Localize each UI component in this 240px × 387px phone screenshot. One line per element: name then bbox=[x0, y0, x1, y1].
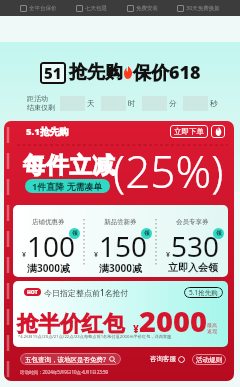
staticText: 满3000减 bbox=[99, 261, 142, 273]
staticText: 今日指定整点前1名抢付 bbox=[44, 287, 129, 298]
staticText: 最高 bbox=[207, 322, 217, 328]
staticText: 5.1抢先购 bbox=[26, 125, 69, 138]
staticText: 1件直降 无需凑单 bbox=[32, 180, 103, 192]
staticText: 领 bbox=[72, 230, 78, 237]
button[interactable]: 30天免费换新 bbox=[177, 4, 220, 12]
staticText: 领 bbox=[216, 230, 222, 237]
staticText: 立即下单 bbox=[174, 127, 204, 136]
staticText: 七天包退 bbox=[85, 5, 107, 12]
staticText: 全平台保价 bbox=[29, 5, 57, 12]
staticText: 30天免费换新 bbox=[186, 4, 220, 12]
staticText: 100 bbox=[27, 227, 76, 265]
staticText: 五包查询，该地区是否免费? bbox=[25, 355, 106, 364]
staticText: *4.26日15点/20点/21点/22点/23点每整点前1名抢付返2000元半… bbox=[18, 334, 172, 340]
staticText: 咨询客服 bbox=[150, 355, 176, 363]
staticText: 2000 bbox=[139, 301, 207, 340]
staticText: 立即入会领 bbox=[168, 261, 218, 273]
button[interactable]: 新品尝新券 bbox=[85, 205, 156, 277]
staticText: ¥ bbox=[133, 322, 139, 336]
staticText: 天 bbox=[87, 99, 95, 108]
button[interactable]: 热卖 bbox=[211, 125, 225, 138]
button[interactable]: 店铺优惠券 bbox=[13, 205, 84, 277]
staticText: 51 bbox=[44, 63, 62, 83]
button[interactable]: 会员专享券 bbox=[157, 205, 228, 277]
staticText: 保价618 bbox=[133, 60, 201, 85]
staticText: ¥ bbox=[166, 250, 171, 260]
staticText: (25%) bbox=[113, 141, 224, 201]
staticText: 5.1抢先购 bbox=[189, 288, 218, 297]
button[interactable]: 5.1抢先购 bbox=[189, 287, 218, 298]
button[interactable]: 全平台保价 bbox=[20, 5, 57, 12]
button[interactable]: 七天包退 bbox=[76, 5, 107, 12]
staticText: 店铺优惠券 bbox=[32, 218, 65, 226]
staticText: 抢半价红包 bbox=[17, 310, 125, 337]
staticText: 免费安装 bbox=[136, 5, 158, 12]
staticText: HOT bbox=[27, 289, 38, 296]
staticText: 活动规则 bbox=[196, 356, 222, 364]
staticText: 会员专享券 bbox=[176, 218, 209, 226]
staticText: 领 bbox=[144, 230, 150, 237]
staticText: 满3000减 bbox=[27, 261, 70, 273]
staticText: 活动时间：2024年5月9日10点-6月1日23:59 bbox=[20, 369, 109, 375]
staticText: 150 bbox=[99, 227, 148, 265]
button[interactable]: 五包查询，该地区是否免费? bbox=[20, 353, 121, 365]
button[interactable]: 活动规则 bbox=[196, 354, 222, 365]
staticText: 每件立减 bbox=[23, 151, 116, 179]
staticText: ¥ bbox=[22, 250, 27, 260]
staticText: ¥ bbox=[94, 250, 99, 260]
button[interactable]: 立即下单 bbox=[174, 125, 204, 138]
staticText: 距活动 bbox=[27, 94, 48, 103]
button[interactable]: 咨询客服 bbox=[148, 355, 187, 363]
staticText: 结束仅剩 bbox=[27, 103, 55, 112]
staticText: 分 bbox=[169, 99, 177, 108]
staticText: 时 bbox=[128, 99, 136, 108]
staticText: 新品尝新券 bbox=[104, 218, 137, 226]
button[interactable]: 免费安装 bbox=[127, 5, 158, 12]
staticText: 抢先购 bbox=[69, 61, 123, 84]
staticText: 秒 bbox=[210, 99, 218, 108]
staticText: 返现 bbox=[207, 328, 217, 334]
staticText: 530 bbox=[171, 227, 220, 265]
